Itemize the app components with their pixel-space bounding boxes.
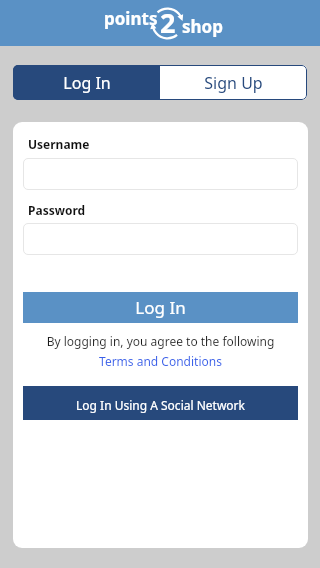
button[interactable]: Log In: [13, 65, 160, 100]
button[interactable]: Log In Using A Social Network: [23, 386, 298, 420]
button[interactable]: Log In: [23, 292, 298, 323]
staticText: shop: [182, 15, 223, 38]
button[interactable]: [23, 158, 298, 190]
staticText: Log In: [135, 296, 186, 319]
button[interactable]: Sign Up: [160, 65, 307, 100]
staticText: Sign Up: [204, 72, 263, 94]
staticText: Log In Using A Social Network: [76, 397, 245, 413]
button[interactable]: [23, 223, 298, 255]
staticText: Username: [28, 136, 90, 152]
staticText: By logging in, you agree to the followin…: [23, 333, 298, 349]
staticText: 2: [160, 4, 176, 41]
staticText: Log In: [63, 72, 111, 94]
staticText: points: [104, 7, 158, 30]
button[interactable]: Terms and Conditions: [23, 353, 298, 369]
other: points2shop: [0, 0, 320, 46]
staticText: Password: [28, 202, 86, 218]
